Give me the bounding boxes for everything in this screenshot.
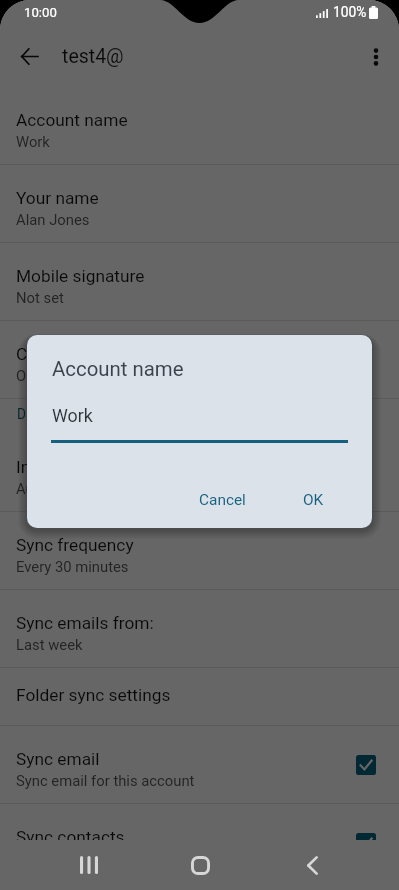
button[interactable]: Cancel	[191, 483, 254, 517]
staticText: Sync frequency	[16, 535, 134, 555]
staticText: Folder sync settings	[16, 685, 171, 705]
staticText: Not set	[16, 289, 64, 306]
staticText: OK	[303, 491, 324, 509]
button[interactable]: Back	[11, 38, 48, 75]
button[interactable]: Folder sync settings	[0, 668, 399, 726]
button[interactable]: Back	[288, 841, 336, 889]
staticText: Work	[16, 133, 50, 150]
staticText: Alan Jones	[16, 211, 90, 228]
button[interactable]: Home	[176, 841, 224, 889]
staticText: Inbox check frequency	[16, 457, 189, 477]
button[interactable]: Inbox check frequency	[0, 434, 399, 512]
staticText: Your name	[16, 188, 99, 208]
staticText: Last week	[16, 636, 83, 653]
button[interactable]: OK	[295, 483, 332, 517]
button[interactable]: Sync emails from:	[0, 590, 399, 668]
button[interactable]: Mobile signature	[0, 243, 399, 321]
staticText: Data usage	[17, 406, 87, 422]
button[interactable]: Colour	[0, 321, 399, 399]
staticText: Sync contacts for this account	[16, 850, 216, 867]
staticText: 10:00	[24, 5, 57, 20]
button[interactable]: Account name	[0, 87, 399, 165]
staticText: Work	[52, 405, 93, 426]
button[interactable]: Sync frequency	[0, 512, 399, 590]
staticText: test4@	[62, 45, 124, 68]
staticText: Sync email for this account	[16, 772, 195, 789]
button[interactable]: Your name	[0, 165, 399, 243]
button[interactable]: Sync contacts	[0, 804, 399, 882]
staticText: Account name	[16, 110, 128, 130]
staticText: 100%	[333, 4, 367, 20]
staticText: Account name	[52, 357, 184, 381]
button[interactable]: Recents	[65, 841, 113, 889]
staticText: Sync email	[16, 749, 100, 769]
staticText: Automatic (Push)	[16, 480, 132, 497]
button[interactable]: Sync email	[0, 726, 399, 804]
staticText: Sync contacts	[16, 827, 125, 847]
staticText: Cancel	[199, 491, 246, 509]
staticText: Sync emails from:	[16, 613, 154, 633]
staticText: Every 30 minutes	[16, 558, 129, 575]
button[interactable]: More options	[362, 43, 390, 71]
staticText: Mobile signature	[16, 266, 145, 286]
staticText: Orange	[16, 367, 64, 384]
staticText: Colour	[16, 344, 67, 364]
